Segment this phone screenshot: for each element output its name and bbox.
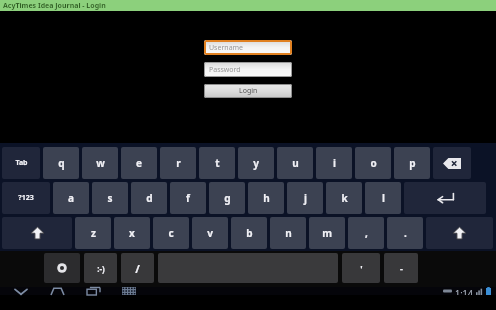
staticText: g bbox=[224, 191, 231, 205]
button[interactable]: , bbox=[348, 217, 384, 249]
button[interactable]: t bbox=[199, 147, 235, 179]
button[interactable]: q bbox=[43, 147, 79, 179]
button[interactable]: Username bbox=[204, 40, 292, 55]
staticText: Login bbox=[239, 86, 258, 96]
staticText: q bbox=[58, 156, 65, 170]
button[interactable]: . bbox=[387, 217, 423, 249]
button[interactable]: Backspace bbox=[433, 147, 471, 179]
button[interactable]: k bbox=[326, 182, 362, 214]
button[interactable]: - bbox=[384, 253, 418, 283]
staticText: AcyTimes Idea Journal - Login bbox=[3, 1, 106, 11]
staticText: s bbox=[107, 191, 113, 205]
staticText: t bbox=[215, 156, 220, 170]
button[interactable]: s bbox=[92, 182, 128, 214]
staticText: ?123 bbox=[18, 193, 34, 203]
staticText: o bbox=[370, 156, 377, 170]
button[interactable]: j bbox=[287, 182, 323, 214]
staticText: :-) bbox=[97, 263, 105, 274]
button[interactable]: Enter bbox=[404, 182, 486, 214]
staticText: Username bbox=[209, 43, 244, 53]
staticText: z bbox=[91, 226, 96, 240]
staticText: f bbox=[186, 191, 190, 205]
staticText: . bbox=[404, 226, 407, 240]
button[interactable]: ?123 bbox=[2, 182, 50, 214]
staticText: y bbox=[253, 156, 259, 170]
button[interactable]: / bbox=[121, 253, 154, 283]
staticText: , bbox=[365, 226, 368, 240]
staticText: v bbox=[207, 226, 213, 240]
staticText: 1:14 bbox=[455, 287, 473, 295]
button[interactable]: Switch keyboard bbox=[118, 287, 140, 295]
staticText: / bbox=[135, 261, 140, 276]
button[interactable]: ' bbox=[342, 253, 380, 283]
staticText: m bbox=[322, 226, 332, 240]
staticText: c bbox=[168, 226, 174, 240]
staticText: j bbox=[304, 191, 307, 205]
button[interactable]: m bbox=[309, 217, 345, 249]
button[interactable]: o bbox=[355, 147, 391, 179]
staticText: h bbox=[263, 191, 270, 205]
button[interactable]: h bbox=[248, 182, 284, 214]
staticText: Tab bbox=[15, 158, 28, 168]
button[interactable]: z bbox=[75, 217, 111, 249]
button[interactable]: g bbox=[209, 182, 245, 214]
button[interactable]: e bbox=[121, 147, 157, 179]
button[interactable]: y bbox=[238, 147, 274, 179]
staticText: r bbox=[176, 156, 181, 170]
button[interactable]: Hide keyboard bbox=[10, 287, 32, 295]
staticText: i bbox=[333, 156, 336, 170]
button[interactable]: Shift bbox=[426, 217, 493, 249]
button[interactable]: Input settings bbox=[44, 253, 80, 283]
button[interactable]: Shift bbox=[2, 217, 72, 249]
button[interactable]: x bbox=[114, 217, 150, 249]
staticText: x bbox=[129, 226, 135, 240]
button[interactable]: a bbox=[53, 182, 89, 214]
staticText: a bbox=[68, 191, 74, 205]
button[interactable]: :-) bbox=[84, 253, 117, 283]
button[interactable]: p bbox=[394, 147, 430, 179]
button[interactable]: w bbox=[82, 147, 118, 179]
button[interactable]: f bbox=[170, 182, 206, 214]
button[interactable]: i bbox=[316, 147, 352, 179]
staticText: e bbox=[136, 156, 142, 170]
button[interactable]: Recent apps bbox=[82, 287, 104, 295]
staticText: - bbox=[400, 262, 403, 274]
staticText: n bbox=[285, 226, 292, 240]
button[interactable]: Password bbox=[204, 62, 292, 77]
button[interactable]: d bbox=[131, 182, 167, 214]
button[interactable]: v bbox=[192, 217, 228, 249]
button[interactable]: Home bbox=[46, 287, 68, 295]
staticText: b bbox=[246, 226, 253, 240]
button[interactable]: Login bbox=[204, 84, 292, 98]
staticText: d bbox=[146, 191, 153, 205]
staticText: k bbox=[341, 191, 348, 205]
button[interactable]: c bbox=[153, 217, 189, 249]
button[interactable]: u bbox=[277, 147, 313, 179]
staticText: Password bbox=[209, 65, 241, 75]
button[interactable]: l bbox=[365, 182, 401, 214]
staticText: l bbox=[382, 191, 385, 205]
staticText: w bbox=[96, 156, 105, 170]
button[interactable]: Tab bbox=[2, 147, 40, 179]
staticText: p bbox=[409, 156, 416, 170]
button[interactable]: r bbox=[160, 147, 196, 179]
button[interactable]: b bbox=[231, 217, 267, 249]
staticText: ' bbox=[360, 262, 363, 274]
staticText: u bbox=[292, 156, 299, 170]
button[interactable]: n bbox=[270, 217, 306, 249]
